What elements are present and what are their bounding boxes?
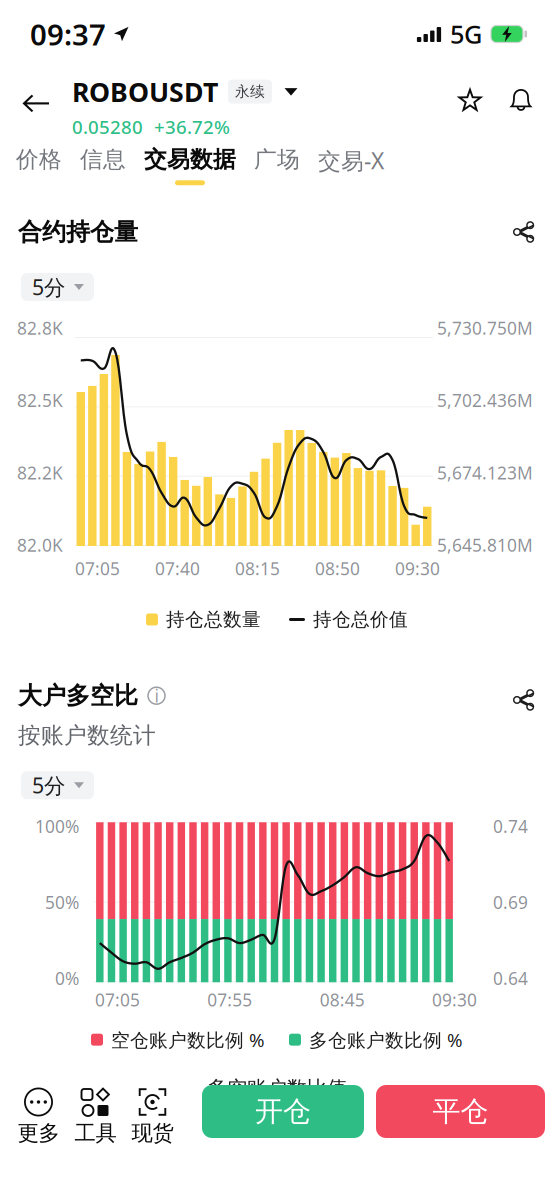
staticText: 0% [55,967,79,990]
staticText: 大户多空比 [18,681,138,710]
staticText: 82.5K [17,389,63,412]
button[interactable]: 价格 [7,142,71,185]
staticText: 07:55 [207,988,252,1011]
button[interactable]: 现货 [124,1085,181,1146]
button[interactable]: 5分 [21,771,94,799]
staticText: 50% [45,891,79,914]
button[interactable]: 工具 [67,1085,124,1146]
button[interactable]: 交易-X [309,142,393,187]
button[interactable]: 交易数据 [135,142,245,185]
staticText: 82.8K [17,316,63,339]
button[interactable]: Back [0,65,72,125]
staticText: 08:50 [315,557,360,580]
staticText: 100% [35,815,79,838]
staticText: 0.74 [493,815,528,838]
staticText: 合约持仓量 [18,217,138,247]
staticText: +36.72% [154,114,230,139]
staticText: 持仓总价值 [313,608,408,631]
staticText: 09:30 [432,988,477,1011]
staticText: 交易数据 [144,145,236,173]
staticText: 工具 [74,1120,116,1146]
button[interactable]: Share [505,213,542,251]
button[interactable]: Switch contract [272,79,302,104]
staticText: 08:15 [235,557,280,580]
button[interactable]: Favorite [444,65,496,124]
staticText: 82.2K [17,461,63,484]
staticText: 交易-X [318,145,384,175]
staticText: 按账户数统计 [18,721,156,749]
button[interactable]: 5分 [21,273,94,301]
staticText: 价格 [16,145,62,173]
staticText: 08:45 [320,988,365,1011]
staticText: 持仓总数量 [166,608,261,631]
staticText: 5,645.810M [437,533,533,556]
button[interactable]: 开仓 [202,1085,364,1138]
button[interactable]: 永续 [228,80,272,104]
staticText: 5分 [32,771,65,799]
staticText: 07:40 [155,557,200,580]
staticText: 广场 [254,145,300,173]
staticText: 0.69 [493,891,528,914]
staticText: 5,702.436M [437,389,533,412]
staticText: 82.0K [17,533,63,556]
staticText: 5,674.123M [437,461,533,484]
staticText: 信息 [80,145,126,173]
staticText: 5分 [32,273,65,301]
staticText: 09:30 [395,557,440,580]
button[interactable]: Price alerts [496,65,542,124]
staticText: 多仓账户数比例 % [309,1027,463,1052]
button[interactable]: Share [505,681,542,719]
staticText: 永续 [235,83,265,101]
staticText: 07:05 [75,557,120,580]
button[interactable]: 信息 [71,142,135,185]
staticText: 5,730.750M [437,316,533,339]
button[interactable]: 更多 [10,1085,67,1146]
staticText: 07:05 [95,988,140,1011]
staticText: 0.05280 [72,114,143,139]
staticText: ROBOUSDT [72,74,218,109]
staticText: 空仓账户数比例 % [111,1027,265,1052]
staticText: 开仓 [255,1094,311,1129]
button[interactable]: 平仓 [364,1085,545,1138]
staticText: 现货 [131,1120,173,1146]
staticText: 0.64 [493,967,528,990]
staticText: 09:37 [30,14,106,53]
staticText: 5G [450,17,482,51]
button[interactable]: 广场 [245,142,309,185]
staticText: 更多 [17,1120,59,1146]
staticText: i [154,684,158,707]
staticText: 平仓 [432,1094,488,1129]
staticText: 多空账户数比值 [207,1076,347,1101]
